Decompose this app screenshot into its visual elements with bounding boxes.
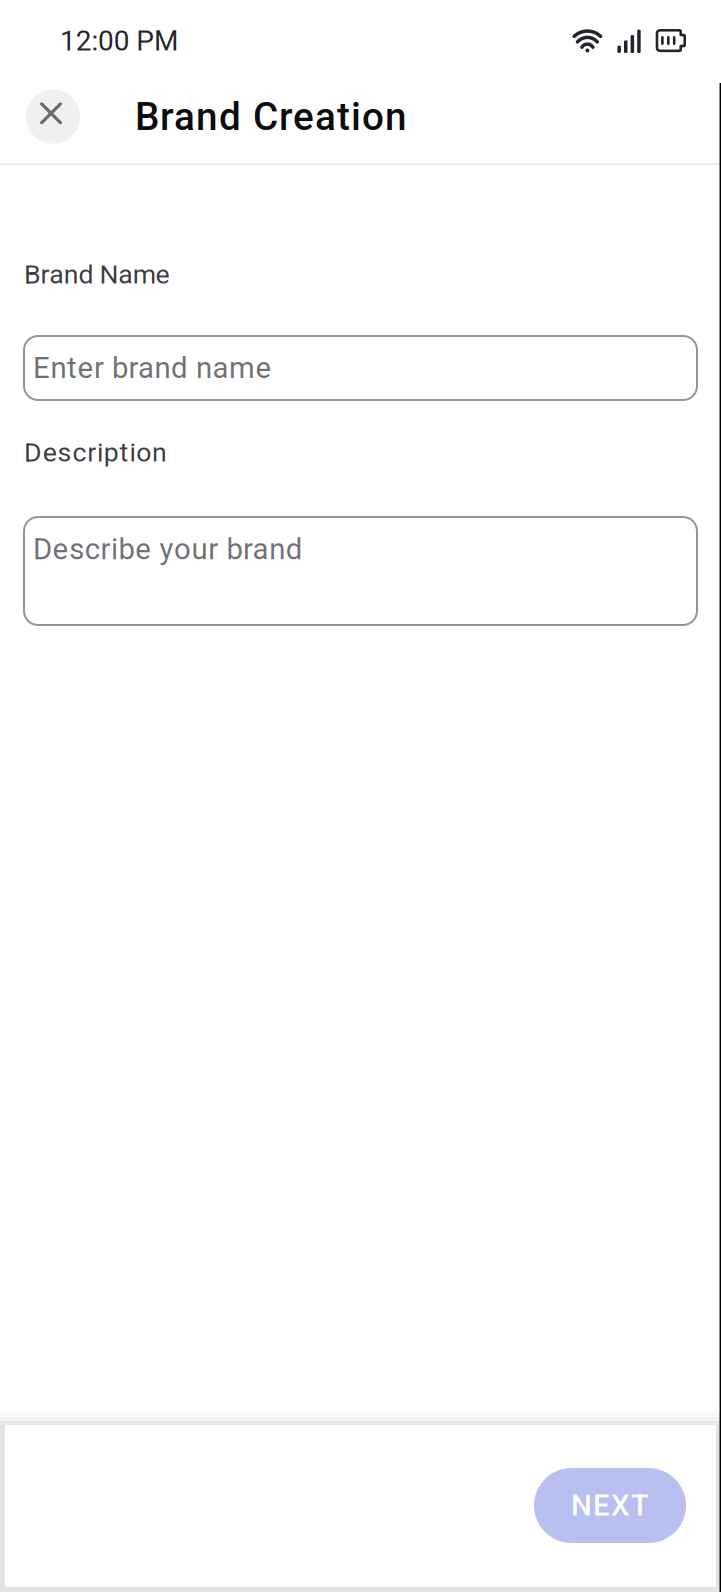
button[interactable]: Close (26, 90, 80, 144)
staticText: 12:00 PM (60, 25, 178, 57)
staticText: Enter brand name (33, 351, 271, 385)
staticText: Description (24, 437, 167, 468)
staticText: Brand Name (24, 259, 169, 290)
button[interactable]: NEXT (534, 1468, 686, 1543)
staticText: Describe your brand (33, 532, 303, 566)
staticText: NEXT (571, 1488, 649, 1523)
staticText: Brand Creation (135, 94, 407, 139)
